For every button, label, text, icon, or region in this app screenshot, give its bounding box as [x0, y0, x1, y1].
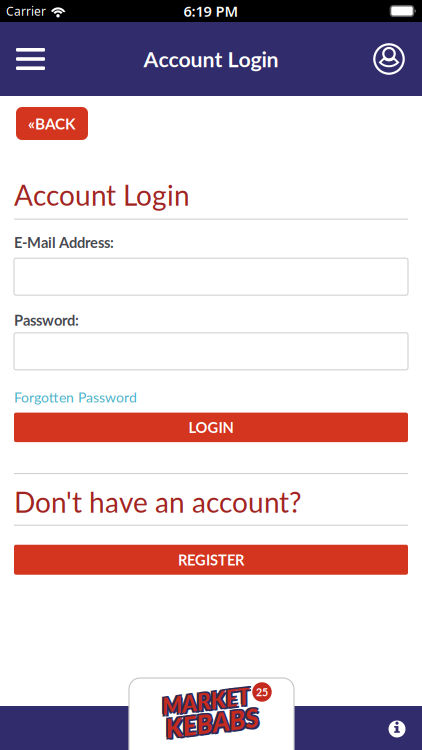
- staticText: MARKET: [162, 686, 251, 713]
- staticText: KEBABS: [163, 709, 256, 740]
- staticText: KEBABS: [164, 707, 257, 739]
- staticText: E-Mail Address:: [14, 234, 114, 251]
- staticText: «BACK: [28, 114, 76, 133]
- button[interactable]: [373, 43, 422, 75]
- staticText: REGISTER: [178, 551, 244, 568]
- button[interactable]: [385, 717, 409, 741]
- staticText: Don't have an account?: [14, 485, 302, 519]
- staticText: KEBABS: [163, 706, 256, 737]
- staticText: 6:19 PM: [183, 1, 238, 21]
- staticText: Account Login: [143, 46, 278, 72]
- button[interactable]: REGISTER: [14, 545, 408, 575]
- button[interactable]: Forgotten Password: [14, 389, 137, 406]
- staticText: LOGIN: [188, 419, 233, 436]
- staticText: Account Login: [14, 178, 190, 212]
- button[interactable]: LOGIN: [14, 413, 408, 442]
- staticText: MARKET: [163, 687, 252, 714]
- staticText: Password:: [14, 311, 79, 329]
- button[interactable]: «BACK: [16, 107, 88, 140]
- staticText: 25: [256, 686, 268, 698]
- button[interactable]: [0, 38, 45, 80]
- staticText: KEBABS: [166, 709, 259, 740]
- staticText: Forgotten Password: [14, 389, 137, 406]
- staticText: MARKET: [162, 689, 251, 716]
- staticText: MARKET: [164, 686, 253, 713]
- staticText: Carrier: [6, 3, 46, 19]
- staticText: MARKET: [165, 689, 254, 716]
- staticText: KEBABS: [165, 706, 258, 737]
